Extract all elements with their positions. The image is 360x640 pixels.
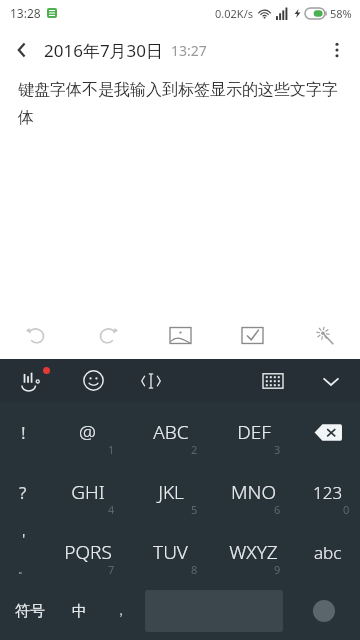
staticText: ABC — [153, 419, 189, 445]
staticText: 4 — [108, 502, 115, 517]
staticText: 58% — [330, 6, 352, 21]
button[interactable]: JKL — [129, 462, 212, 522]
button[interactable]: ， — [100, 582, 141, 640]
button[interactable]: WXYZ — [212, 522, 295, 582]
staticText: abc — [314, 541, 342, 564]
button[interactable]: MNO — [212, 462, 295, 522]
button[interactable]: Redo — [72, 311, 144, 359]
button[interactable]: ! — [0, 402, 46, 462]
staticText: 中 — [72, 602, 87, 621]
button[interactable]: More options — [314, 27, 360, 73]
button[interactable]: 中 — [59, 582, 100, 640]
button[interactable]: Input settings — [0, 359, 64, 402]
staticText: 2016年7月30日 — [44, 39, 164, 62]
staticText: 。 — [18, 562, 29, 576]
staticText: 3 — [274, 442, 281, 457]
staticText: GHI — [71, 479, 105, 505]
button[interactable]: 符号 — [0, 582, 59, 640]
staticText: 键盘字体不是我输入到标签显示的这些文字字体 — [18, 80, 344, 128]
staticText: TUV — [153, 539, 188, 565]
button[interactable]: ABC — [129, 402, 212, 462]
staticText: 7 — [108, 562, 115, 577]
staticText: 13:27 — [171, 41, 207, 60]
button[interactable]: Insert image — [144, 311, 216, 359]
staticText: DEF — [237, 419, 271, 445]
button[interactable]: ? — [0, 462, 46, 522]
button[interactable]: TUV — [129, 522, 212, 582]
button[interactable]: Checklist — [216, 311, 288, 359]
staticText: 0 — [343, 502, 350, 517]
button[interactable]: Hide keyboard — [302, 359, 360, 402]
staticText: 9 — [274, 562, 281, 577]
staticText: JKL — [158, 479, 184, 505]
button[interactable]: PQRS — [46, 522, 129, 582]
staticText: 0.02K/s — [215, 6, 253, 21]
staticText: 6 — [274, 502, 281, 517]
button[interactable]: Backspace — [295, 402, 360, 462]
staticText: 123 — [313, 481, 343, 504]
staticText: 5 — [191, 502, 198, 517]
button[interactable]: Move cursor — [122, 359, 180, 402]
staticText: 符号 — [15, 602, 45, 621]
staticText: ' — [22, 528, 26, 548]
button[interactable]: Effects — [288, 311, 360, 359]
staticText: 13:28 — [10, 5, 41, 21]
staticText: PQRS — [64, 539, 112, 565]
button[interactable]: Keyboard layout — [244, 359, 302, 402]
staticText: ? — [19, 481, 27, 504]
button[interactable]: DEF — [212, 402, 295, 462]
staticText: ， — [114, 602, 128, 620]
button[interactable]: Back — [0, 28, 44, 72]
button[interactable]: @ — [46, 402, 129, 462]
staticText: WXYZ — [229, 539, 278, 565]
button[interactable]: Undo — [0, 311, 72, 359]
staticText: @ — [79, 419, 96, 445]
button[interactable] — [295, 522, 360, 582]
button[interactable] — [295, 462, 360, 522]
button[interactable]: GHI — [46, 462, 129, 522]
staticText: ! — [21, 421, 26, 444]
button[interactable]: Emoji — [64, 359, 122, 402]
button[interactable]: ' — [0, 522, 46, 582]
staticText: 2 — [191, 442, 198, 457]
staticText: 1 — [108, 442, 115, 457]
staticText: 8 — [191, 562, 198, 577]
button[interactable]: Enter — [287, 582, 360, 640]
staticText: MNO — [231, 479, 276, 505]
